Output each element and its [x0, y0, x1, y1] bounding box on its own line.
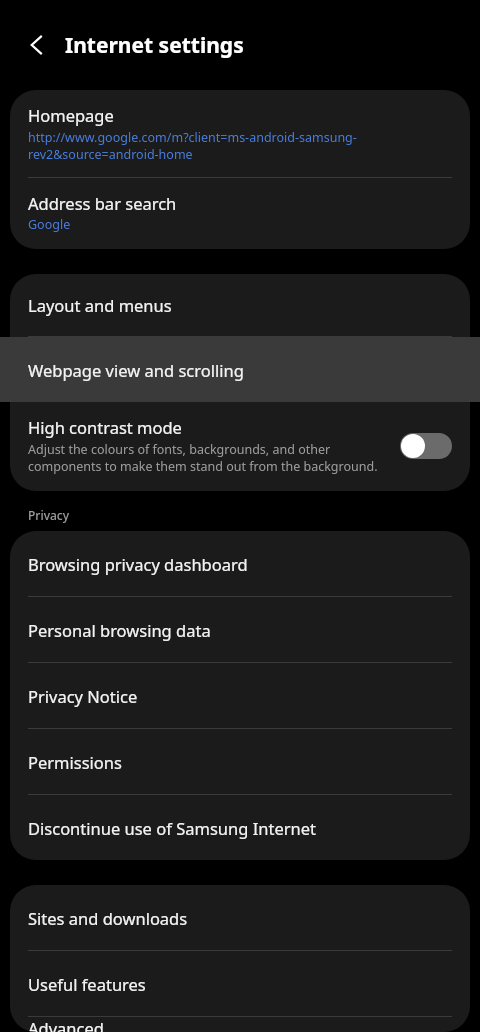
button[interactable]: Back [16, 24, 58, 66]
button[interactable]: Webpage view and scrolling [0, 337, 480, 402]
staticText: Sites and downloads [28, 907, 188, 929]
staticText: Personal browsing data [28, 619, 211, 641]
button[interactable]: Browsing privacy dashboard [10, 531, 470, 596]
staticText: Layout and menus [28, 294, 172, 316]
button[interactable]: Useful features [10, 951, 470, 1016]
button[interactable]: Layout and menus [10, 274, 470, 336]
button[interactable]: Sites and downloads [10, 885, 470, 950]
button[interactable]: High contrast mode toggle [400, 433, 452, 459]
button[interactable]: High contrast mode [10, 402, 470, 491]
staticText: Webpage view and scrolling [28, 359, 244, 381]
staticText: Google [28, 216, 71, 233]
button[interactable]: Homepage [10, 90, 470, 177]
staticText: Permissions [28, 751, 122, 773]
staticText: Useful features [28, 973, 146, 995]
button[interactable]: Permissions [10, 729, 470, 794]
button[interactable]: Discontinue use of Samsung Internet [10, 795, 470, 860]
staticText: Browsing privacy dashboard [28, 553, 248, 575]
staticText: Privacy [28, 507, 70, 523]
staticText: Privacy Notice [28, 685, 138, 707]
staticText: Advanced [28, 1017, 104, 1032]
staticText: Adjust the colours of fonts, backgrounds… [28, 441, 388, 475]
button[interactable]: Personal browsing data [10, 597, 470, 662]
button[interactable]: Advanced [10, 1017, 470, 1032]
staticText: Address bar search [28, 192, 177, 214]
button[interactable]: Address bar search [10, 178, 470, 249]
staticText: Homepage [28, 104, 114, 126]
button[interactable]: Privacy Notice [10, 663, 470, 728]
staticText: High contrast mode [28, 416, 182, 438]
staticText: Discontinue use of Samsung Internet [28, 817, 316, 839]
staticText: Internet settings [65, 31, 244, 60]
staticText: http://www.google.com/m?client=ms-androi… [28, 129, 454, 163]
